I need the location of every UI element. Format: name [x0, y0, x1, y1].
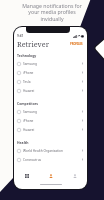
staticText: Competitors — [17, 101, 39, 106]
staticText: Retriever — [17, 39, 50, 49]
staticText: Manage notifications for your media prof… — [22, 2, 82, 23]
button[interactable]: Samsung — [14, 59, 87, 68]
staticText: PROFILES — [70, 42, 83, 46]
button[interactable]: Feed — [14, 170, 39, 182]
button[interactable]: iPhone — [14, 116, 87, 125]
staticText: Samsung — [23, 110, 37, 114]
button[interactable]: Huawei — [14, 86, 87, 95]
button[interactable]: Account — [63, 170, 87, 182]
staticText: Technology — [17, 53, 37, 58]
staticText: Huawei — [23, 89, 35, 93]
button[interactable]: Tesla — [14, 77, 87, 86]
staticText: 9:41 — [17, 34, 24, 38]
button[interactable]: iPhone — [14, 68, 87, 77]
button[interactable]: Samsung — [14, 107, 87, 116]
staticText: iPhone — [23, 71, 34, 75]
button[interactable]: PROFILES — [69, 41, 84, 47]
button[interactable]: Coronavirus — [14, 155, 87, 164]
button[interactable]: World Health Organisation — [14, 146, 87, 155]
button[interactable]: Profiles — [39, 170, 63, 182]
staticText: Samsung — [23, 62, 37, 66]
staticText: Huawei — [23, 128, 35, 132]
staticText: Health — [17, 140, 29, 145]
staticText: iPhone — [23, 119, 34, 123]
button[interactable]: Huawei — [14, 125, 87, 134]
staticText: World Health Organisation — [23, 149, 63, 153]
staticText: Tesla — [23, 80, 31, 84]
staticText: Coronavirus — [23, 158, 42, 162]
